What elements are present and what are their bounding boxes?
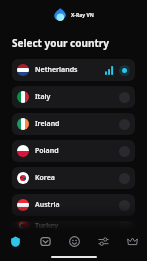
staticText: Italy	[35, 92, 51, 102]
button[interactable]: Home	[0, 230, 30, 252]
staticText: Ireland	[35, 119, 60, 129]
button[interactable]: Premium	[118, 230, 147, 252]
button[interactable]: Netherlands	[12, 59, 135, 81]
button[interactable]: Italy	[12, 86, 135, 108]
staticText: Netherlands	[35, 65, 78, 75]
button[interactable]: Korea	[12, 167, 135, 189]
button[interactable]: Inbox	[30, 230, 60, 252]
button[interactable]: Profile	[60, 230, 89, 252]
staticText: Turkey	[35, 221, 59, 230]
button[interactable]: Austria	[12, 194, 135, 216]
button[interactable]: Settings	[89, 230, 118, 252]
staticText: Korea	[35, 173, 55, 183]
button[interactable]: Turkey	[12, 221, 135, 230]
staticText: Poland	[35, 146, 59, 156]
button[interactable]: Ireland	[12, 113, 135, 135]
staticText: Austria	[35, 200, 60, 210]
staticText: X-Ray VN	[71, 12, 94, 19]
button[interactable]: Poland	[12, 140, 135, 162]
staticText: Select your country	[12, 36, 109, 50]
